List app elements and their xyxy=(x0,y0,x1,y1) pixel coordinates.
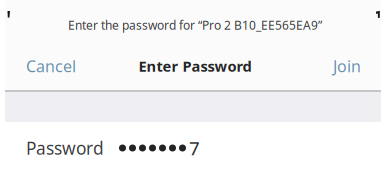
staticText: Password xyxy=(26,136,104,159)
button[interactable]: Password xyxy=(0,0,376,50)
staticText: Enter the password for “Pro 2 B10_EE565E… xyxy=(68,17,322,33)
staticText: 7 xyxy=(189,136,200,160)
staticText: Cancel xyxy=(26,55,76,77)
staticText: Enter Password xyxy=(138,56,251,76)
button[interactable]: Cancel xyxy=(0,0,72,46)
button[interactable]: Join xyxy=(0,0,60,46)
staticText: Join xyxy=(333,55,361,77)
